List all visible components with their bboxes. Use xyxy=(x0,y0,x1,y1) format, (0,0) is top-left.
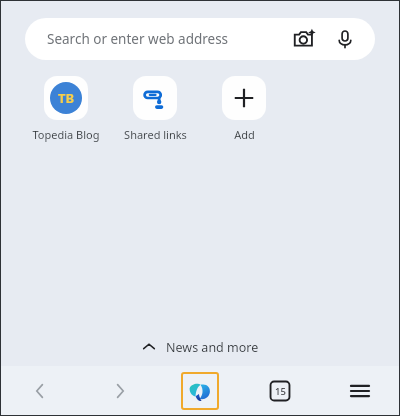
staticText: News and more xyxy=(166,339,259,356)
staticText: 15 xyxy=(275,385,286,398)
staticText: Search or enter web address xyxy=(47,30,291,48)
staticText: TB xyxy=(58,89,75,107)
button[interactable]: Voice search xyxy=(333,27,357,51)
button[interactable]: Menu xyxy=(320,366,400,416)
staticText: Shared links xyxy=(124,127,187,142)
button[interactable]: Search or enter web address xyxy=(25,18,375,60)
button[interactable]: Search with camera xyxy=(291,26,317,52)
button[interactable]: Add xyxy=(204,76,284,142)
button[interactable]: Back xyxy=(0,366,80,416)
button[interactable]: Copilot xyxy=(181,372,219,410)
button[interactable]: TB xyxy=(26,76,106,142)
button[interactable]: Forward xyxy=(80,366,160,416)
button[interactable]: News and more xyxy=(0,334,400,360)
button[interactable]: Shared links xyxy=(115,76,195,142)
staticText: Topedia Blog xyxy=(32,127,100,142)
button[interactable]: Tabs, 15 open xyxy=(240,366,320,416)
staticText: Add xyxy=(234,127,255,142)
